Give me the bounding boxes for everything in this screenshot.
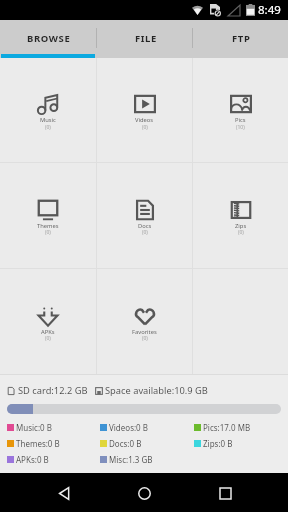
staticText: Pics:17.0 MB: [203, 422, 251, 433]
button[interactable]: Back: [47, 476, 81, 510]
button[interactable]: BROWSE: [0, 20, 96, 58]
button[interactable]: Zips: [193, 163, 288, 268]
button[interactable]: FTP: [193, 20, 288, 58]
staticText: (0): [45, 124, 51, 131]
staticText: Docs:0 B: [109, 438, 142, 449]
staticText: Favorites: [132, 328, 157, 336]
staticText: Pics: [235, 116, 246, 124]
staticText: (0): [45, 335, 51, 342]
staticText: BROWSE: [27, 32, 71, 45]
staticText: Zips:0 B: [203, 438, 233, 449]
button[interactable]: Home: [127, 476, 161, 510]
button[interactable]: Favorites: [97, 269, 192, 374]
staticText: (0): [238, 229, 244, 236]
staticText: (0): [142, 335, 148, 342]
button[interactable]: Videos: [97, 58, 192, 162]
staticText: FILE: [135, 32, 157, 45]
staticText: Misc:1.3 GB: [109, 454, 153, 465]
staticText: Videos: [135, 116, 154, 124]
button[interactable]: Pics: [193, 58, 288, 162]
staticText: Music: [40, 116, 56, 124]
button[interactable]: APKs: [0, 269, 96, 374]
staticText: (0): [142, 229, 148, 236]
staticText: FTP: [232, 32, 251, 45]
button[interactable]: Themes: [0, 163, 96, 268]
button[interactable]: Recent apps: [208, 476, 242, 510]
staticText: 8:49: [258, 2, 281, 18]
staticText: Videos:0 B: [109, 422, 148, 433]
staticText: (0): [142, 124, 148, 131]
staticText: Zips: [235, 222, 247, 230]
staticText: APKs: [41, 328, 55, 336]
staticText: (10): [236, 124, 245, 131]
staticText: SD card:12.2 GB: [18, 384, 88, 397]
staticText: (0): [45, 229, 51, 236]
staticText: Themes:0 B: [16, 438, 60, 449]
button[interactable]: FILE: [97, 20, 192, 58]
staticText: APKs:0 B: [16, 454, 49, 465]
staticText: Space available:10.9 GB: [105, 384, 208, 397]
button[interactable]: Docs: [97, 163, 192, 268]
staticText: Docs: [138, 222, 152, 230]
staticText: Themes: [37, 222, 59, 230]
button[interactable]: Music: [0, 58, 96, 162]
staticText: Music:0 B: [16, 422, 52, 433]
